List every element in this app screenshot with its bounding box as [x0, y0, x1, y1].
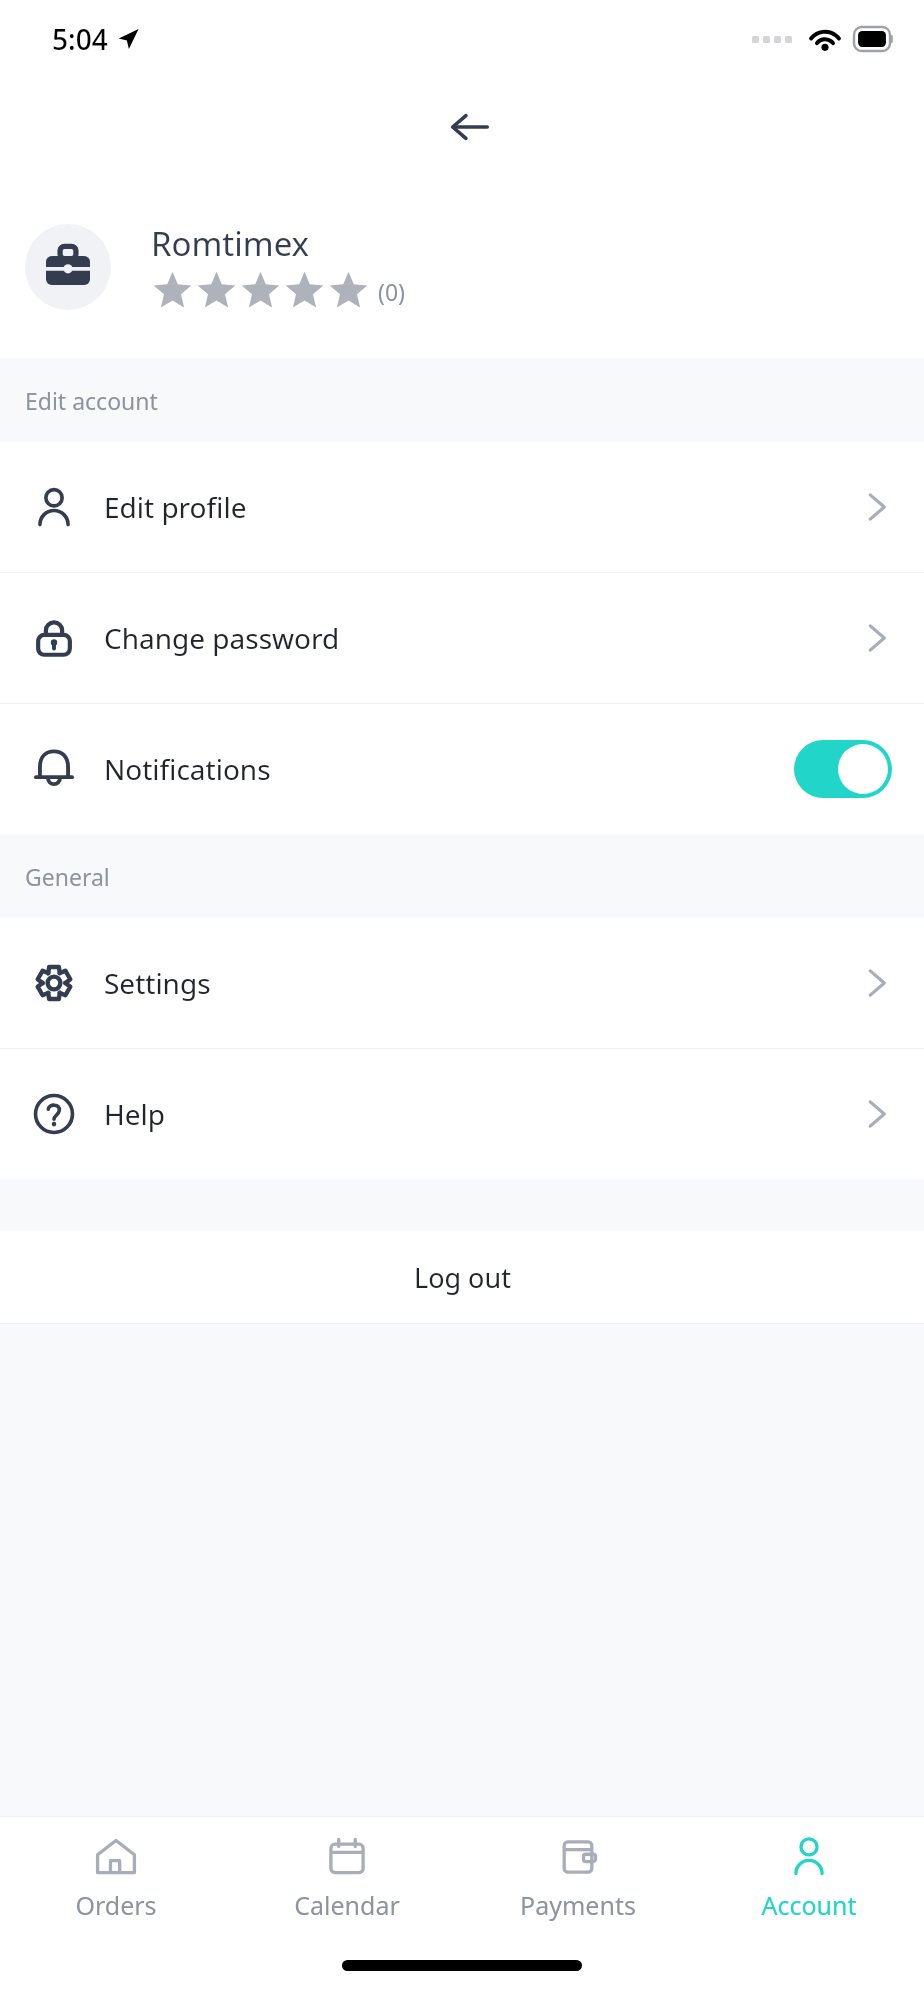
staticText: Orders: [75, 1888, 157, 1922]
button[interactable]: Back: [436, 94, 502, 160]
button[interactable]: Orders: [0, 1834, 231, 1944]
staticText: Payments: [520, 1888, 636, 1922]
staticText: Settings: [104, 964, 211, 1002]
staticText: 5:04: [52, 20, 108, 58]
button[interactable]: Notifications: [0, 704, 924, 834]
button[interactable]: Payments: [462, 1834, 693, 1944]
staticText: (0): [378, 276, 405, 307]
staticText: General: [25, 861, 110, 892]
button[interactable]: Edit profile: [0, 442, 924, 572]
button[interactable]: Notifications on: [794, 740, 892, 798]
staticText: Notifications: [104, 750, 271, 788]
button[interactable]: Log out: [0, 1231, 924, 1323]
button[interactable]: Help: [0, 1049, 924, 1179]
staticText: Calendar: [294, 1888, 400, 1922]
staticText: Change password: [104, 619, 340, 657]
staticText: Help: [104, 1095, 165, 1133]
staticText: Account: [761, 1888, 857, 1922]
button[interactable]: Settings: [0, 918, 924, 1048]
button[interactable]: Account: [693, 1834, 924, 1944]
staticText: Edit profile: [104, 488, 247, 526]
staticText: Log out: [414, 1259, 511, 1296]
staticText: Romtimex: [151, 221, 310, 266]
staticText: Edit account: [25, 385, 158, 416]
button[interactable]: Calendar: [231, 1834, 462, 1944]
button[interactable]: Change password: [0, 573, 924, 703]
